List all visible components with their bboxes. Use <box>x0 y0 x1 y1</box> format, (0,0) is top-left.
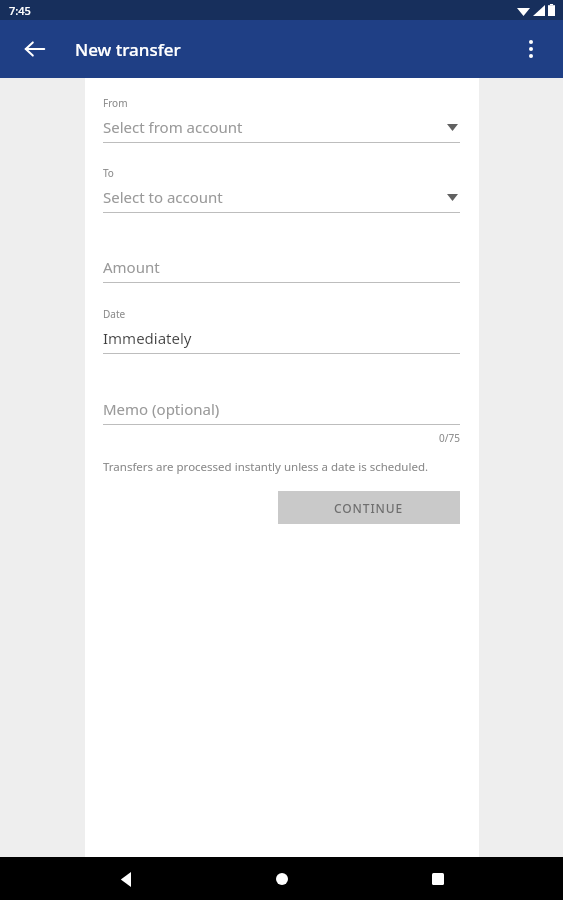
staticText: Transfers are processed instantly unless… <box>103 459 429 475</box>
staticText: Select to account <box>103 187 447 207</box>
staticText: To <box>103 166 114 180</box>
staticText: 0/75 <box>103 431 460 445</box>
button[interactable]: To <box>103 166 460 213</box>
staticText: Immediately <box>103 328 192 348</box>
staticText: CONTINUE <box>334 500 404 516</box>
staticText: New transfer <box>75 38 181 61</box>
button[interactable]: Back <box>106 859 146 899</box>
button[interactable]: More options <box>509 27 553 71</box>
button[interactable]: From <box>103 96 460 143</box>
staticText: 7:45 <box>9 3 31 18</box>
button[interactable]: Home <box>262 859 302 899</box>
button[interactable]: Date <box>103 307 460 354</box>
button[interactable]: Recent apps <box>418 859 458 899</box>
button[interactable]: Back <box>12 26 58 72</box>
button[interactable]: Memo (optional) <box>103 399 460 425</box>
staticText: Date <box>103 307 126 321</box>
button[interactable]: Amount <box>103 257 460 283</box>
staticText: Amount <box>103 257 160 277</box>
staticText: Memo (optional) <box>103 399 220 419</box>
staticText: From <box>103 96 128 110</box>
staticText: Select from account <box>103 117 447 137</box>
button[interactable]: CONTINUE <box>278 491 460 524</box>
